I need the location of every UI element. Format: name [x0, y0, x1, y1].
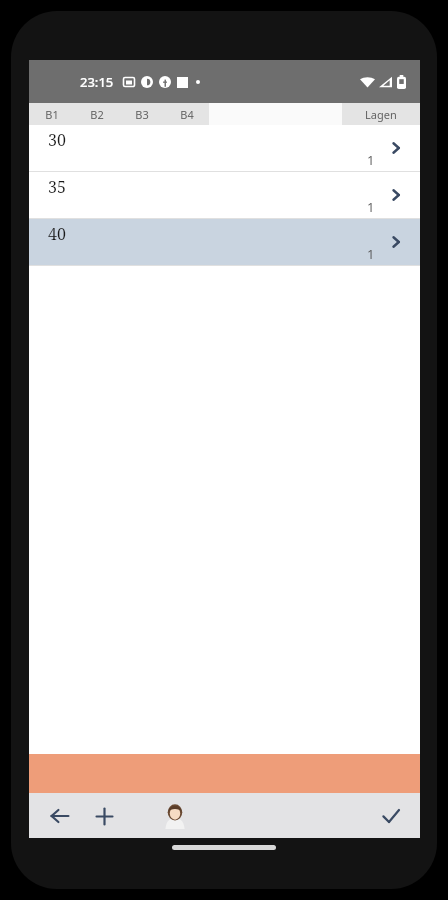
- button[interactable]: Back: [41, 797, 79, 835]
- staticText: B2: [90, 107, 104, 122]
- staticText: B1: [45, 107, 59, 122]
- staticText: 1: [367, 198, 375, 216]
- button[interactable]: Add: [85, 797, 123, 835]
- button[interactable]: B2: [74, 103, 119, 125]
- staticText: 40: [48, 223, 66, 245]
- button[interactable]: B3: [119, 103, 164, 125]
- button[interactable]: Lagen: [342, 103, 420, 125]
- button[interactable]: Confirm: [372, 797, 410, 835]
- button[interactable]: B4: [164, 103, 209, 125]
- button[interactable]: 40: [29, 219, 420, 265]
- button[interactable]: 30: [29, 125, 420, 171]
- button[interactable]: 35: [29, 172, 420, 218]
- staticText: B4: [180, 107, 194, 122]
- staticText: 1: [367, 245, 375, 263]
- staticText: Lagen: [365, 107, 397, 122]
- button[interactable]: B1: [29, 103, 74, 125]
- staticText: B3: [135, 107, 149, 122]
- button[interactable]: Open 30: [384, 136, 408, 160]
- button[interactable]: Open 40: [384, 230, 408, 254]
- staticText: 23:15: [80, 73, 114, 91]
- staticText: 1: [367, 151, 375, 169]
- button[interactable]: Profile: [158, 799, 192, 833]
- staticText: 30: [48, 129, 66, 151]
- button[interactable]: Open 35: [384, 183, 408, 207]
- staticText: 35: [48, 176, 66, 198]
